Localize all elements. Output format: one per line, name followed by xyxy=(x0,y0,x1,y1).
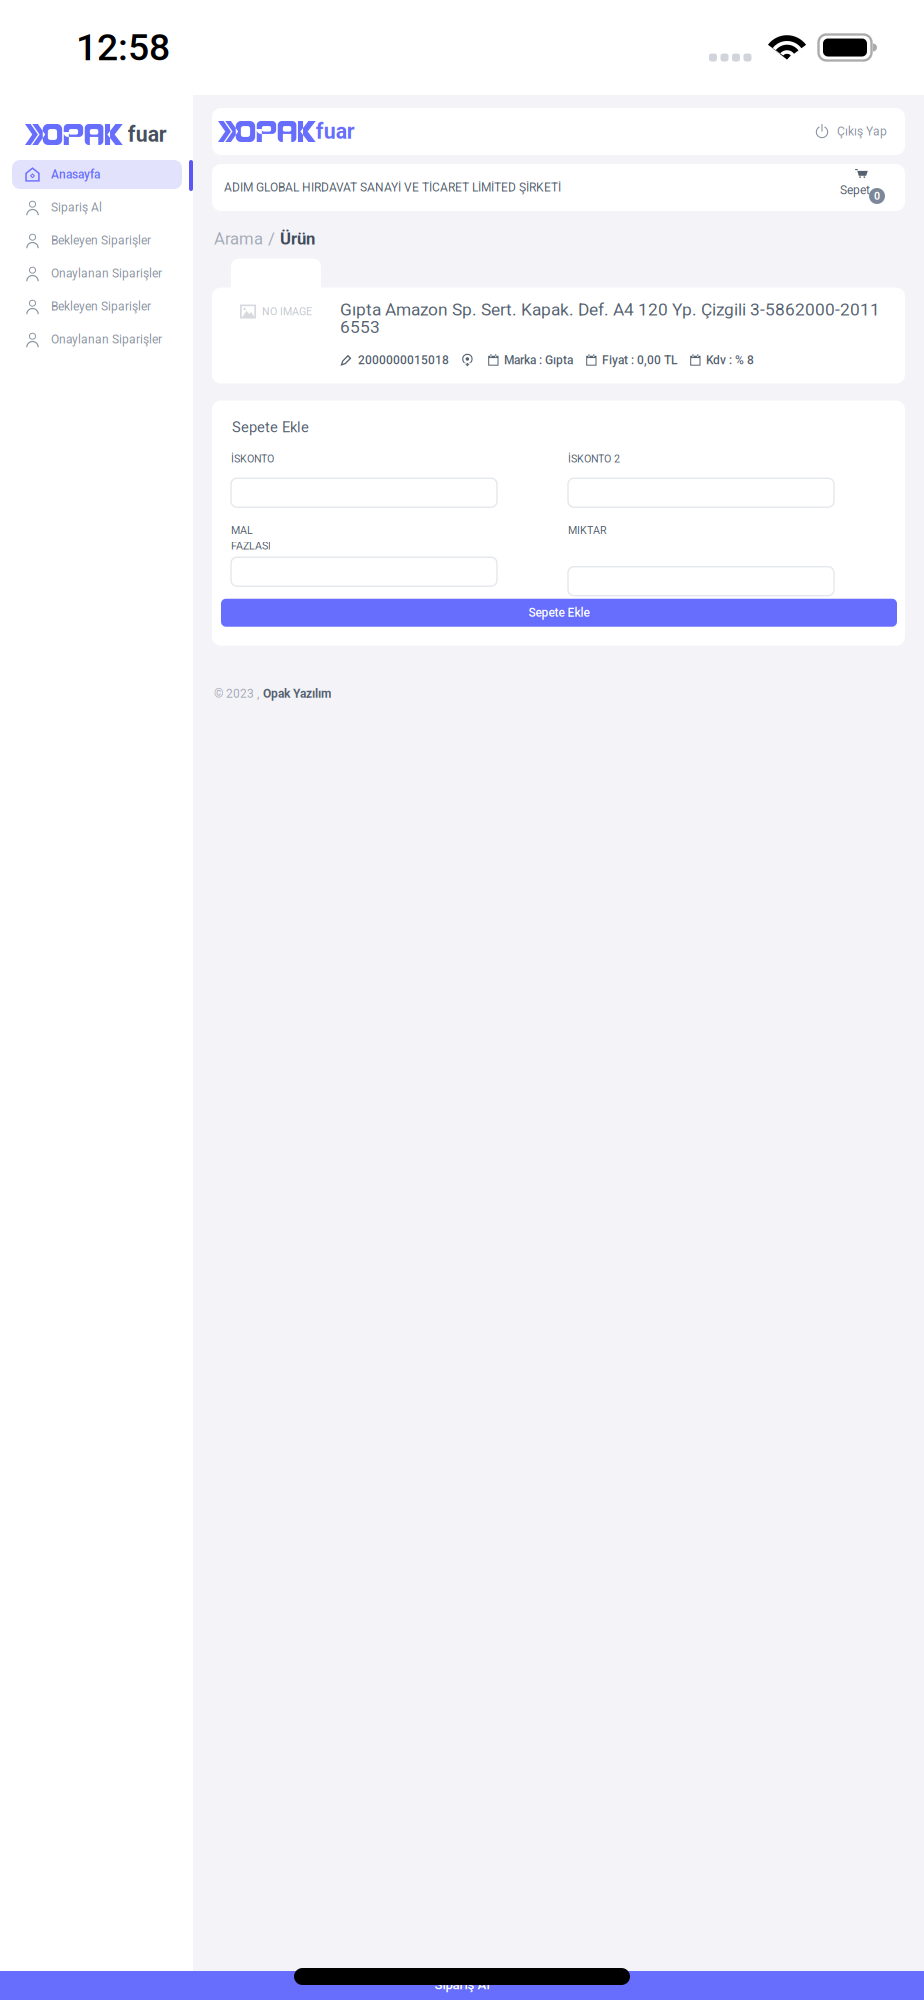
staticText: Ürün xyxy=(280,229,315,248)
button[interactable]: Onaylanan Siparişler xyxy=(12,259,182,288)
button[interactable]: Sipariş Al xyxy=(0,1971,924,2000)
staticText: Sepete Ekle xyxy=(232,418,309,436)
button[interactable]: Sepete Ekle xyxy=(221,599,897,627)
staticText: Onaylanan Siparişler xyxy=(51,332,162,347)
staticText: Onaylanan Siparişler xyxy=(51,266,162,281)
staticText: Bekleyen Siparişler xyxy=(51,233,151,248)
staticText: Sepete Ekle xyxy=(528,606,589,620)
staticText: © 2023 , xyxy=(214,687,259,701)
staticText: Sipariş Al xyxy=(434,1977,489,1993)
staticText: fuar xyxy=(128,122,167,147)
staticText: İSKONTO 2 xyxy=(568,453,620,465)
staticText: Opak Yazılım xyxy=(263,687,331,701)
staticText: FAZLASI xyxy=(231,540,271,552)
staticText: İSKONTO xyxy=(231,453,274,465)
staticText: Gıpta Amazon Sp. Sert. Kapak. Def. A4 12… xyxy=(340,299,880,337)
staticText: Anasayfa xyxy=(51,167,100,182)
button[interactable]: Sepet xyxy=(840,169,886,206)
button[interactable]: Sipariş Al xyxy=(12,193,182,222)
staticText: Kdv : % 8 xyxy=(706,353,754,367)
staticText: Bekleyen Siparişler xyxy=(51,299,151,314)
staticText: MAL xyxy=(231,524,253,537)
staticText: Sepet xyxy=(840,183,870,197)
staticText: / xyxy=(268,229,275,248)
staticText: Sipariş Al xyxy=(51,200,102,215)
staticText: Marka : Gıpta xyxy=(504,353,573,367)
staticText: NO IMAGE xyxy=(262,305,312,318)
button[interactable]: Bekleyen Siparişler xyxy=(12,292,182,321)
button[interactable]: Bekleyen Siparişler xyxy=(12,226,182,255)
staticText: Fiyat : 0,00 TL xyxy=(602,353,677,367)
staticText: fuar xyxy=(316,119,355,144)
staticText: ADIM GLOBAL HIRDAVAT SANAYİ VE TİCARET L… xyxy=(224,180,561,195)
button[interactable]: Çıkış Yap xyxy=(815,119,887,144)
staticText: 2000000015018 xyxy=(358,353,449,367)
staticText: MIKTAR xyxy=(568,524,607,537)
staticText: Arama xyxy=(214,229,263,248)
staticText: 12:58 xyxy=(76,26,170,69)
button[interactable]: Onaylanan Siparişler xyxy=(12,325,182,354)
staticText: Çıkış Yap xyxy=(837,124,887,139)
staticText: 0 xyxy=(874,190,880,202)
button[interactable]: Anasayfa xyxy=(12,160,182,189)
